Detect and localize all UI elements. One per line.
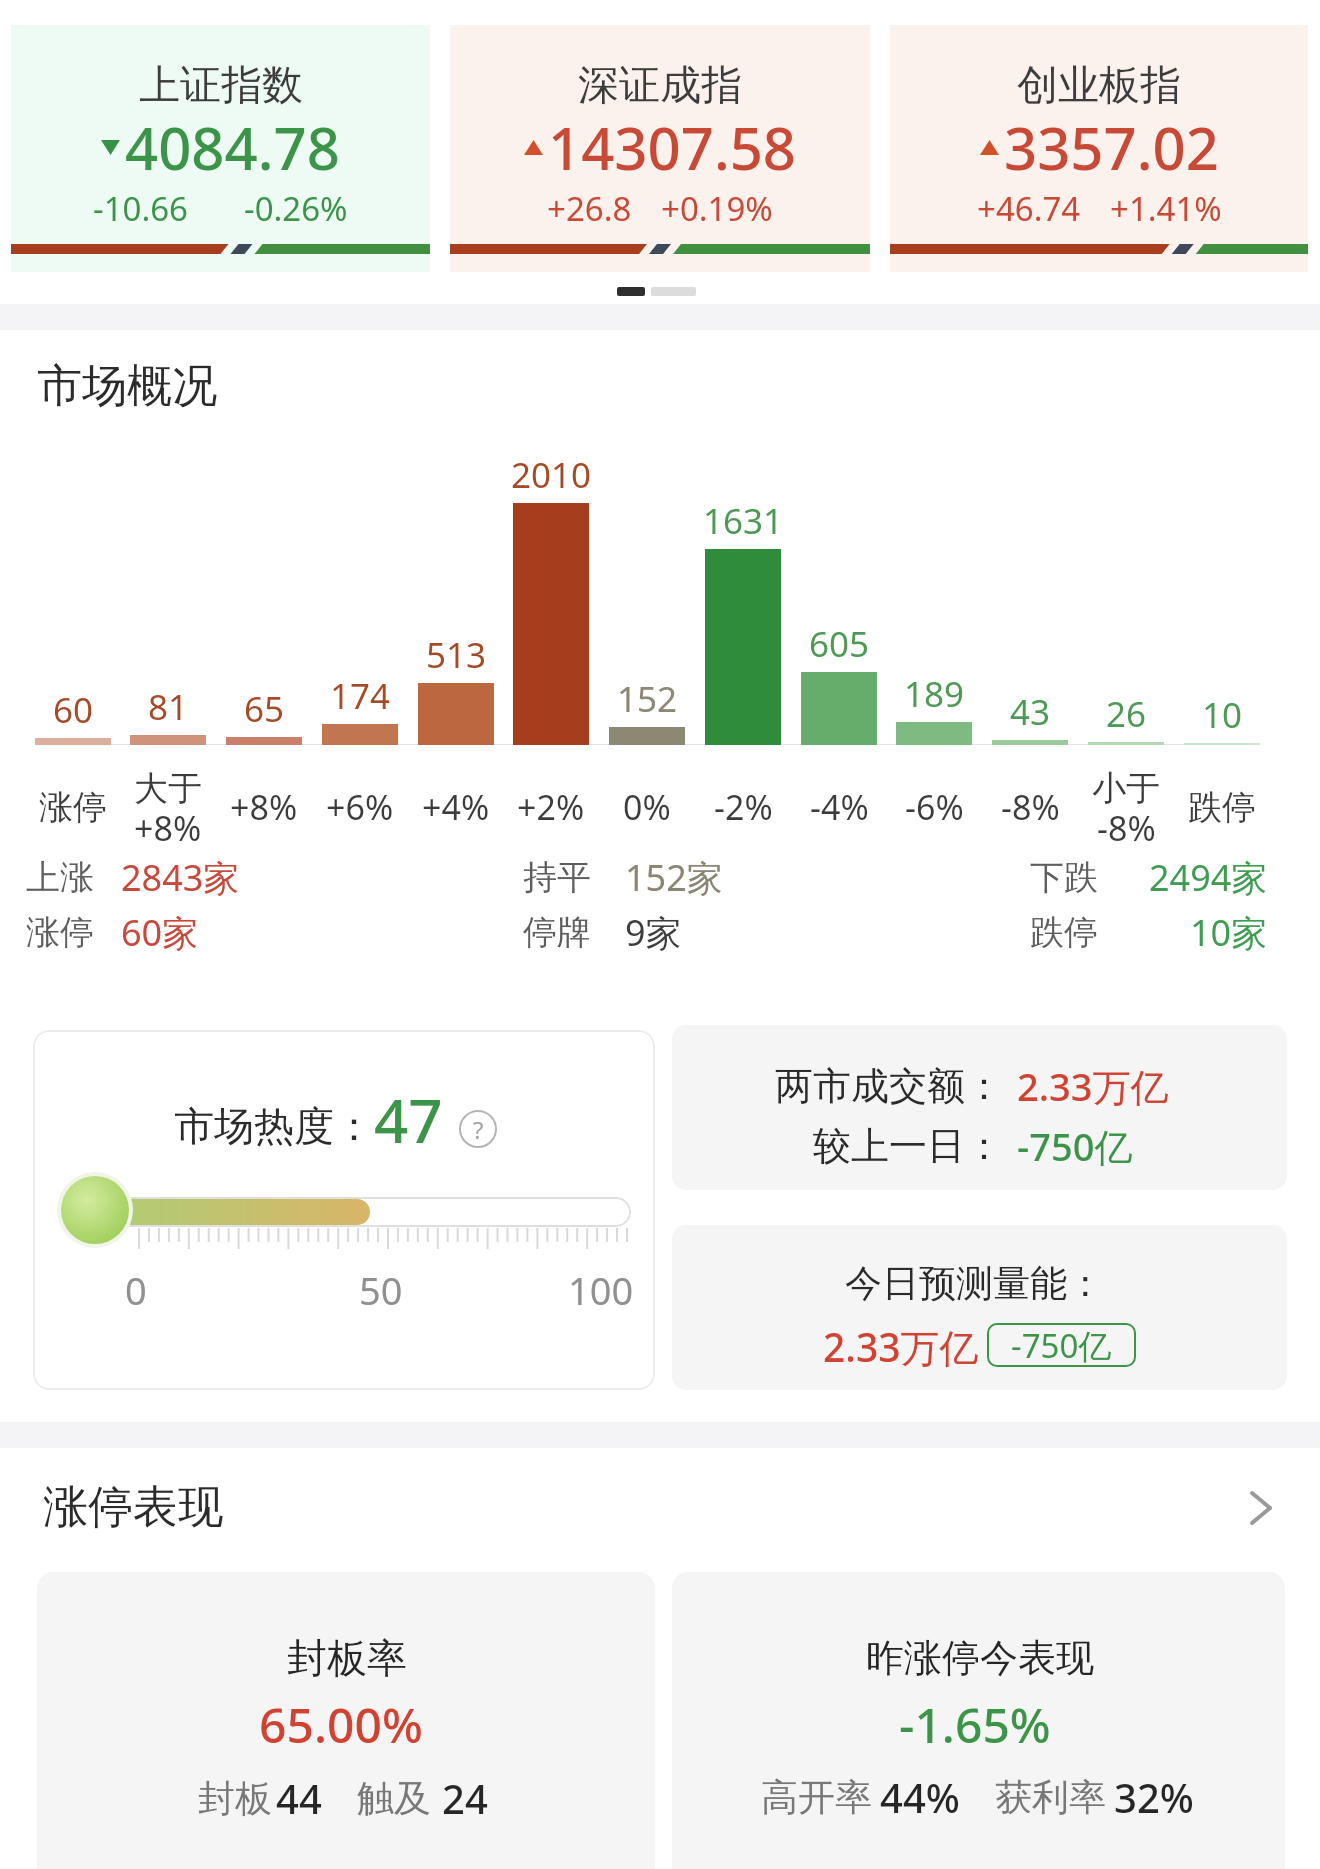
staticText: 涨停 bbox=[26, 911, 94, 954]
button[interactable] bbox=[33, 1030, 655, 1390]
button[interactable]: 涨停表现 bbox=[0, 1462, 1320, 1550]
staticText: 高开率 bbox=[761, 1774, 872, 1821]
staticText: 上涨 bbox=[26, 856, 94, 899]
staticText: 152家 bbox=[625, 853, 723, 902]
staticText: -750亿 bbox=[1017, 1120, 1133, 1172]
staticText: 下跌 bbox=[1030, 856, 1098, 899]
staticText: 小于 bbox=[1092, 767, 1160, 810]
staticText: 0 bbox=[125, 1264, 147, 1316]
staticText: 两市成交额： bbox=[775, 1062, 1003, 1110]
staticText: 4084.78 bbox=[125, 108, 340, 187]
staticText: 44 bbox=[276, 1771, 322, 1825]
staticText: 43 bbox=[1010, 688, 1051, 736]
staticText: -2% bbox=[714, 784, 773, 830]
staticText: -8% bbox=[1097, 805, 1156, 851]
staticText: +0.19% bbox=[661, 186, 773, 231]
staticText: 50 bbox=[359, 1264, 403, 1316]
staticText: 涨停 bbox=[39, 786, 107, 829]
staticText: 较上一日： bbox=[813, 1122, 1003, 1170]
staticText: 封板率 bbox=[287, 1633, 407, 1683]
staticText: 9家 bbox=[625, 908, 682, 957]
staticText: +4% bbox=[422, 784, 490, 830]
staticText: -10.66 bbox=[93, 186, 188, 231]
staticText: 3357.02 bbox=[1004, 108, 1219, 187]
staticText: 上证指数 bbox=[139, 60, 303, 112]
staticText: 44% bbox=[880, 1770, 960, 1824]
staticText: 2494家 bbox=[1149, 853, 1268, 902]
staticText: 100 bbox=[568, 1264, 634, 1316]
staticText: -1.65% bbox=[899, 1692, 1051, 1757]
staticText: 封板 bbox=[198, 1775, 272, 1822]
button[interactable]: 上证指数 bbox=[11, 25, 430, 272]
staticText: 跌停 bbox=[1188, 786, 1256, 829]
staticText: -6% bbox=[905, 784, 964, 830]
staticText: -0.26% bbox=[244, 186, 348, 231]
staticText: 停牌 bbox=[523, 911, 591, 954]
staticText: 持平 bbox=[523, 856, 591, 899]
staticText: 32% bbox=[1114, 1770, 1194, 1824]
staticText: -750亿 bbox=[1011, 1323, 1112, 1367]
staticText: 今日预测量能： bbox=[845, 1260, 1104, 1307]
staticText: +46.74 bbox=[977, 186, 1081, 231]
staticText: 2.33万亿 bbox=[1017, 1060, 1169, 1112]
staticText: 513 bbox=[426, 631, 487, 679]
staticText: -8% bbox=[1001, 784, 1060, 830]
button[interactable] bbox=[37, 1572, 655, 1869]
staticText: 189 bbox=[904, 670, 965, 718]
staticText: +6% bbox=[326, 784, 394, 830]
staticText: 65.00% bbox=[259, 1692, 423, 1757]
staticText: 152 bbox=[617, 675, 678, 723]
staticText: 涨停表现 bbox=[43, 1479, 223, 1536]
staticText: 174 bbox=[330, 672, 391, 720]
staticText: 26 bbox=[1106, 690, 1147, 738]
staticText: 2.33万亿 bbox=[823, 1320, 979, 1373]
staticText: +8% bbox=[134, 805, 202, 851]
staticText: +1.41% bbox=[1110, 186, 1222, 231]
staticText: 24 bbox=[442, 1771, 488, 1825]
staticText: 2010 bbox=[511, 451, 592, 499]
staticText: 605 bbox=[809, 620, 870, 668]
staticText: 10 bbox=[1202, 691, 1243, 739]
staticText: 60 bbox=[53, 686, 94, 734]
staticText: 81 bbox=[148, 683, 189, 731]
staticText: 跌停 bbox=[1030, 911, 1098, 954]
staticText: 市场概况 bbox=[37, 358, 217, 415]
staticText: 2843家 bbox=[121, 853, 240, 902]
staticText: 市场热度： bbox=[174, 1101, 374, 1151]
button[interactable] bbox=[672, 1025, 1287, 1190]
staticText: 65 bbox=[244, 685, 285, 733]
button[interactable] bbox=[672, 1225, 1287, 1390]
staticText: 47 bbox=[374, 1079, 443, 1161]
staticText: 昨涨停今表现 bbox=[866, 1634, 1094, 1682]
staticText: 获利率 bbox=[995, 1774, 1106, 1821]
staticText: 创业板指 bbox=[1017, 60, 1181, 112]
button[interactable] bbox=[672, 1572, 1285, 1869]
staticText: +8% bbox=[230, 784, 298, 830]
staticText: 14307.58 bbox=[548, 108, 797, 187]
staticText: 60家 bbox=[121, 908, 199, 957]
staticText: 深证成指 bbox=[578, 60, 742, 112]
staticText: 触及 bbox=[357, 1775, 431, 1822]
staticText: -4% bbox=[810, 784, 869, 830]
button[interactable]: 深证成指 bbox=[450, 25, 870, 272]
staticText: ? bbox=[473, 1113, 484, 1146]
staticText: +2% bbox=[517, 784, 585, 830]
staticText: 0% bbox=[623, 784, 671, 830]
staticText: 10家 bbox=[1190, 908, 1268, 957]
staticText: +26.8 bbox=[547, 186, 632, 231]
staticText: 1631 bbox=[703, 497, 784, 545]
staticText: 大于 bbox=[134, 767, 202, 810]
button[interactable]: 创业板指 bbox=[890, 25, 1308, 272]
